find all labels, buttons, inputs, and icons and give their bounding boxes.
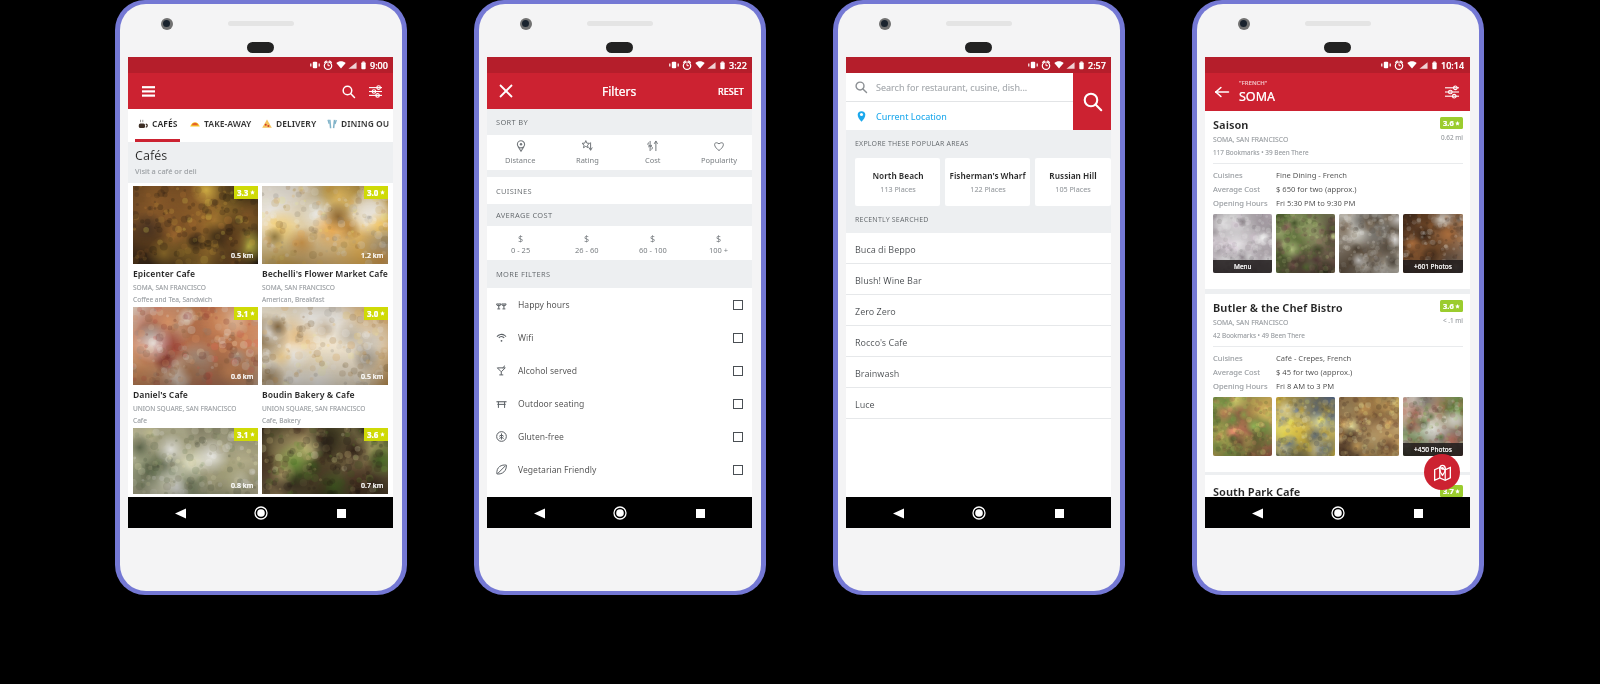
staticText: Buca di Beppo <box>855 243 916 255</box>
staticText: $ <box>650 232 656 244</box>
button[interactable]: Gluten-free <box>487 420 752 453</box>
button[interactable]: Back <box>1211 81 1233 103</box>
button[interactable]: $ <box>686 226 752 260</box>
button[interactable]: Back <box>886 501 910 525</box>
button[interactable]: DELIVERY <box>252 109 317 142</box>
button[interactable]: 3.0 <box>262 307 388 425</box>
staticText: UNION SQUARE, SAN FRANCISCO <box>133 404 237 413</box>
button[interactable]: Saison <box>1205 111 1470 289</box>
button[interactable]: Search for restaurant, cusine, dish... <box>846 73 1073 101</box>
button[interactable]: Recents <box>688 501 712 525</box>
button[interactable]: Back <box>527 501 551 525</box>
button[interactable]: Back <box>1245 501 1269 525</box>
button[interactable]: Home <box>608 501 632 525</box>
staticText: Rocco's Cafe <box>855 336 908 348</box>
button[interactable]: $ <box>487 226 554 260</box>
button[interactable]: Filters <box>363 79 387 103</box>
button[interactable]: 3.6 <box>262 428 388 494</box>
staticText: 42 Bookmarks • 49 Been There <box>1213 331 1305 340</box>
staticText: 26 - 60 <box>575 245 599 255</box>
button[interactable]: Alcohol served <box>487 354 752 387</box>
staticText: UNION SQUARE, SAN FRANCISCO <box>262 404 366 413</box>
button[interactable]: Wifi <box>487 321 752 354</box>
button[interactable]: Home <box>967 501 991 525</box>
staticText: Fri 8 AM to 3 PM <box>1276 381 1335 391</box>
staticText: Coffee and Tea, Sandwich <box>133 295 213 304</box>
button[interactable]: 3.3 <box>133 186 258 304</box>
button[interactable]: $ <box>620 226 686 260</box>
staticText: Alcohol served <box>518 365 578 377</box>
button[interactable]: Fisherman's Wharf <box>945 158 1030 206</box>
button[interactable]: North Beach <box>855 158 940 206</box>
staticText: Cuisines <box>1213 353 1243 363</box>
button[interactable]: Recents <box>1047 501 1071 525</box>
button[interactable]: Map view <box>1424 454 1460 490</box>
staticText: Fisherman's Wharf <box>949 170 1026 181</box>
staticText: 0.6 km <box>231 372 254 382</box>
staticText: 105 Places <box>1055 184 1091 194</box>
button[interactable]: Close <box>495 80 517 102</box>
button[interactable]: Happy hours <box>487 288 752 321</box>
button[interactable]: Back <box>168 501 192 525</box>
staticText: Opening Hours <box>1213 198 1268 208</box>
staticText: Fine Dining - French <box>1276 170 1348 180</box>
button[interactable]: $ <box>554 226 620 260</box>
button[interactable]: Blush! Wine Bar <box>846 264 1111 295</box>
staticText: Daniel's Cafe <box>133 389 188 401</box>
staticText: 0.8 km <box>231 481 254 491</box>
button[interactable]: Distance <box>487 135 554 170</box>
button[interactable]: CAFÉS <box>128 109 180 142</box>
button[interactable]: Recents <box>329 501 353 525</box>
button[interactable]: Search <box>1073 73 1111 130</box>
button[interactable]: Butler & the Chef Bistro <box>1205 294 1470 472</box>
staticText: Visit a café or deli <box>135 166 197 176</box>
button[interactable]: Popularity <box>686 135 752 170</box>
staticText: 3.3 <box>237 187 249 198</box>
button[interactable]: 3.1 <box>133 307 258 425</box>
button[interactable]: Current Location <box>846 102 1073 130</box>
button[interactable]: Home <box>1326 501 1350 525</box>
button[interactable]: Filters <box>1441 81 1463 103</box>
button[interactable]: 3.1 <box>133 428 258 494</box>
staticText: Butler & the Chef Bistro <box>1213 300 1343 315</box>
button[interactable]: Home <box>249 501 273 525</box>
button[interactable]: Vegetarian Friendly <box>487 453 752 486</box>
button[interactable]: Menu <box>137 80 159 102</box>
button[interactable]: DINING OU <box>317 109 390 142</box>
button[interactable]: Luce <box>846 388 1111 419</box>
staticText: 3.1 <box>237 308 249 319</box>
button[interactable]: Buca di Beppo <box>846 233 1111 264</box>
button[interactable]: CUISINES <box>487 177 752 204</box>
staticText: Cafe <box>133 416 147 425</box>
staticText: Current Location <box>876 110 947 122</box>
button[interactable]: Outdoor seating <box>487 387 752 420</box>
staticText: Cafe, Bakery <box>262 416 301 425</box>
button[interactable]: TAKE-AWAY <box>180 109 252 142</box>
staticText: $ <box>518 232 524 244</box>
button[interactable]: Rocco's Cafe <box>846 326 1111 357</box>
button[interactable]: 3.0 <box>262 186 388 304</box>
button[interactable]: Zero Zero <box>846 295 1111 326</box>
staticText: Russian Hill <box>1049 170 1097 181</box>
staticText: Bechelli's Flower Market Cafe <box>262 268 388 280</box>
staticText: "FRENCH" <box>1239 79 1268 87</box>
button[interactable]: Brainwash <box>846 357 1111 388</box>
staticText: SOMA, SAN FRANCISCO <box>1213 318 1289 327</box>
button[interactable]: RESET <box>718 85 752 97</box>
staticText: 3.0 <box>367 187 379 198</box>
button[interactable]: Search <box>336 79 360 103</box>
button[interactable]: Recents <box>1406 501 1430 525</box>
button[interactable]: Russian Hill <box>1035 158 1111 206</box>
staticText: 10:14 <box>1441 59 1465 71</box>
staticText: Opening Hours <box>1213 381 1268 391</box>
staticText: $ 650 for two (approx.) <box>1276 184 1357 194</box>
staticText: SOMA, SAN FRANCISCO <box>1213 135 1289 144</box>
staticText: $ <box>584 232 590 244</box>
staticText: SOMA <box>1239 88 1275 105</box>
button[interactable]: Rating <box>554 135 620 170</box>
staticText: Gluten-free <box>518 431 564 443</box>
staticText: Epicenter Cafe <box>133 268 196 280</box>
button[interactable]: Cost <box>620 135 686 170</box>
staticText: TAKE-AWAY <box>204 118 252 130</box>
staticText: Average Cost <box>1213 367 1260 377</box>
